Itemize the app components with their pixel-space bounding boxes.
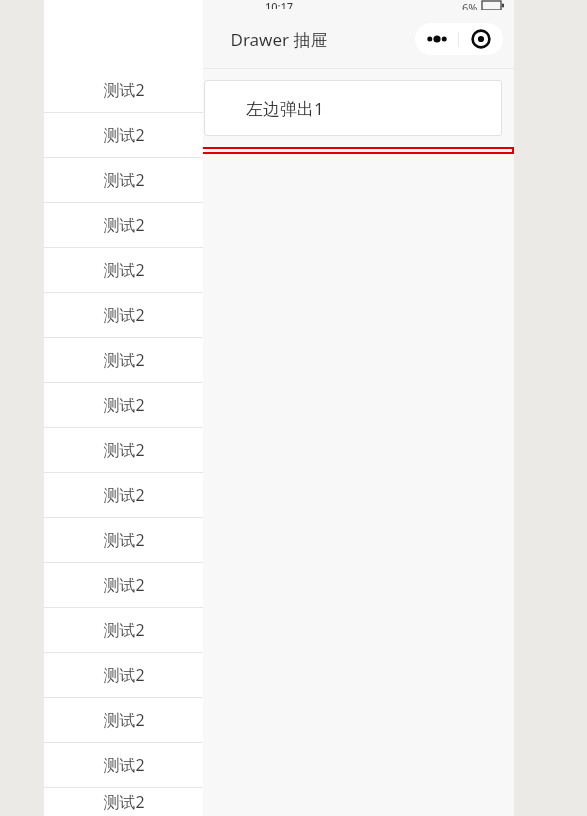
- button[interactable]: 测试2: [44, 473, 203, 517]
- button[interactable]: 测试2: [44, 518, 203, 562]
- staticText: 测试2: [103, 664, 145, 686]
- button[interactable]: 测试2: [44, 203, 203, 247]
- staticText: 测试2: [103, 124, 145, 146]
- button[interactable]: 测试2: [44, 563, 203, 607]
- staticText: 测试2: [103, 529, 145, 551]
- staticText: 测试2: [103, 394, 145, 416]
- button[interactable]: 测试2: [44, 788, 203, 816]
- button[interactable]: 左边弹出1: [204, 80, 502, 136]
- staticText: 测试2: [103, 754, 145, 776]
- button[interactable]: 测试2: [44, 698, 203, 742]
- staticText: 测试2: [103, 439, 145, 461]
- staticText: 测试2: [103, 709, 145, 731]
- button[interactable]: 测试2: [44, 608, 203, 652]
- button[interactable]: More: [415, 23, 458, 55]
- button[interactable]: 测试2: [44, 68, 203, 112]
- staticText: 测试2: [103, 169, 145, 191]
- staticText: 测试2: [103, 619, 145, 641]
- staticText: 测试2: [103, 304, 145, 326]
- button[interactable]: 测试2: [44, 293, 203, 337]
- staticText: 测试2: [103, 79, 145, 101]
- staticText: 测试2: [103, 259, 145, 281]
- button[interactable]: 测试2: [44, 743, 203, 787]
- button[interactable]: Close mini program: [459, 23, 503, 55]
- staticText: 10:17: [265, 0, 294, 9]
- staticText: 测试2: [103, 214, 145, 236]
- button[interactable]: 测试2: [44, 338, 203, 382]
- button[interactable]: 测试2: [44, 428, 203, 472]
- staticText: Drawer 抽屉: [230, 28, 328, 51]
- staticText: 测试2: [103, 484, 145, 506]
- button[interactable]: 测试2: [44, 158, 203, 202]
- button[interactable]: 测试2: [44, 113, 203, 157]
- staticText: 测试2: [103, 349, 145, 371]
- button[interactable]: 测试2: [44, 248, 203, 292]
- staticText: 测试2: [103, 791, 145, 813]
- staticText: 测试2: [103, 574, 145, 596]
- button[interactable]: 测试2: [44, 653, 203, 697]
- staticText: 左边弹出1: [246, 97, 324, 120]
- staticText: 6%: [462, 0, 478, 10]
- button[interactable]: 测试2: [44, 383, 203, 427]
